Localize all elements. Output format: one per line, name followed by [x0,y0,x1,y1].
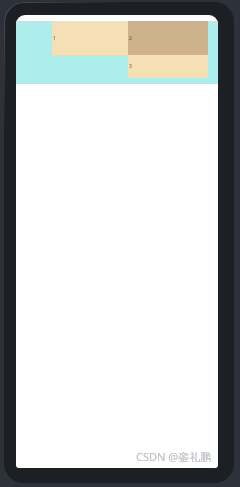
staticText: 3 [129,63,132,70]
button[interactable]: Box 3 [128,55,208,78]
staticText: 1 [53,35,56,42]
button[interactable]: Box 1 [52,21,128,55]
staticText: CSDN @銮礼鹏 [136,449,212,464]
staticText: 2 [129,35,132,42]
